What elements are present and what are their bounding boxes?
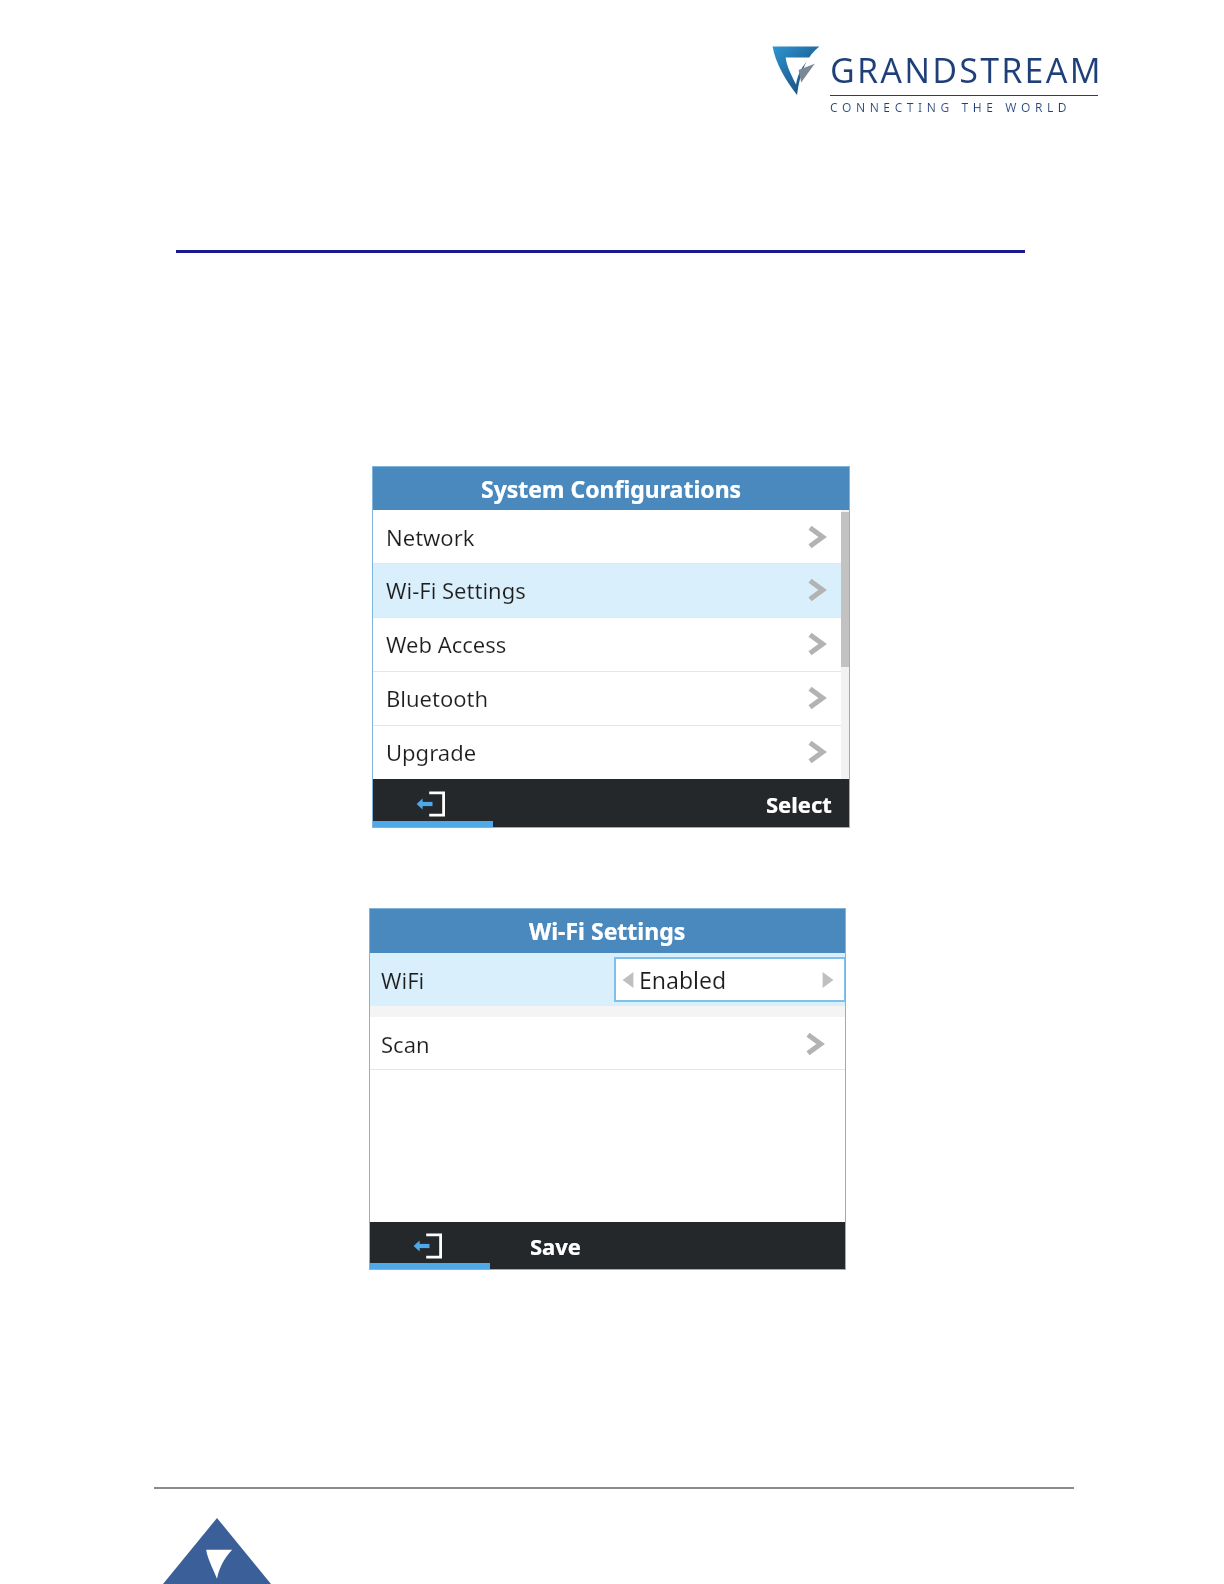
staticText: Select <box>766 789 832 819</box>
staticText: Upgrade <box>386 737 477 767</box>
staticText: Bluetooth <box>386 683 489 713</box>
button[interactable]: Wi-Fi Settings <box>372 563 850 617</box>
staticText: System Configurations <box>481 473 742 504</box>
button[interactable]: Scan <box>369 1017 846 1070</box>
staticText: Web Access <box>386 629 507 659</box>
button[interactable]: Web Access <box>372 617 850 671</box>
staticText: Enabled <box>639 964 727 995</box>
staticText: Wi-Fi Settings <box>386 575 526 605</box>
button[interactable]: Select <box>760 785 838 823</box>
button[interactable]: WiFi <box>369 953 846 1006</box>
staticText: Wi-Fi Settings <box>529 915 686 946</box>
button[interactable]: Exit <box>411 1229 445 1263</box>
staticText: GRANDSTREAM <box>830 47 1103 93</box>
staticText: WiFi <box>381 965 425 995</box>
button[interactable]: Network <box>372 510 850 563</box>
staticText: CONNECTING THE WORLD <box>830 99 1072 115</box>
button[interactable]: Bluetooth <box>372 671 850 725</box>
button[interactable]: Enabled <box>614 957 846 1002</box>
staticText: Scan <box>381 1029 430 1059</box>
button[interactable]: Save <box>524 1227 587 1265</box>
staticText: Save <box>530 1231 581 1261</box>
staticText: Network <box>386 522 475 552</box>
button[interactable]: Upgrade <box>372 725 850 779</box>
button[interactable]: Exit <box>414 787 448 821</box>
